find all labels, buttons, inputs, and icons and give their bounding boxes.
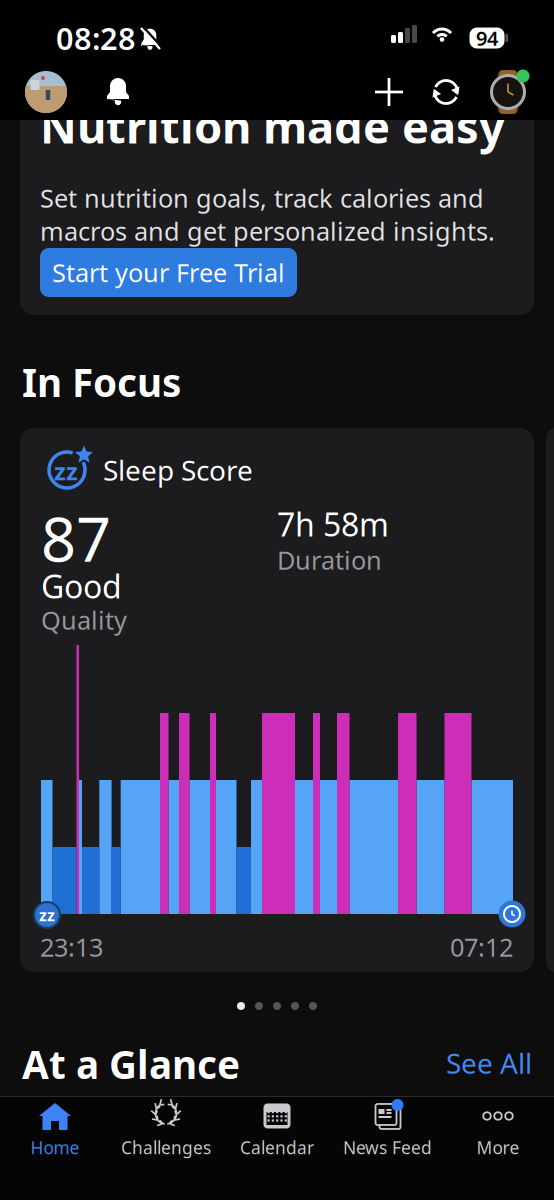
staticText: 07:12 — [450, 930, 513, 964]
staticText: Sleep Score — [103, 451, 253, 489]
staticText: Duration — [277, 543, 382, 577]
staticText: Set nutrition goals, track calories and — [40, 181, 484, 215]
button[interactable]: Challenges — [111, 1101, 221, 1159]
staticText: Home — [30, 1136, 79, 1159]
staticText: See All — [446, 1044, 532, 1082]
staticText: 7h 58m — [277, 503, 389, 545]
button[interactable]: Sync — [430, 76, 462, 108]
staticText: In Focus — [22, 356, 181, 408]
staticText: macros and get personalized insights. — [40, 214, 495, 248]
staticText: 87 — [41, 497, 111, 579]
staticText: Challenges — [121, 1136, 211, 1159]
button[interactable]: Device — [485, 69, 531, 115]
button[interactable]: Home — [0, 1101, 110, 1159]
staticText: zz — [54, 455, 78, 487]
staticText: Good — [41, 565, 122, 607]
staticText: Nutrition made easy — [40, 96, 505, 156]
staticText: Calendar — [240, 1136, 314, 1159]
button[interactable]: Add — [375, 78, 403, 106]
button[interactable]: News Feed — [332, 1101, 442, 1159]
staticText: Start your Free Trial — [52, 256, 285, 289]
staticText: 23:13 — [40, 930, 103, 964]
staticText: Quality — [41, 603, 127, 637]
button[interactable]: Profile — [25, 71, 67, 113]
staticText: More — [476, 1136, 519, 1159]
staticText: 08:28 — [56, 18, 136, 58]
button[interactable]: Notifications — [100, 74, 136, 110]
button[interactable]: More — [443, 1101, 553, 1159]
staticText: zz — [39, 904, 55, 926]
staticText: News Feed — [343, 1136, 432, 1159]
staticText: 94 — [476, 25, 498, 51]
button[interactable]: Calendar — [222, 1101, 332, 1159]
button[interactable]: See All — [446, 1044, 532, 1082]
staticText: At a Glance — [22, 1038, 240, 1090]
button[interactable]: Start your Free Trial — [40, 248, 297, 297]
